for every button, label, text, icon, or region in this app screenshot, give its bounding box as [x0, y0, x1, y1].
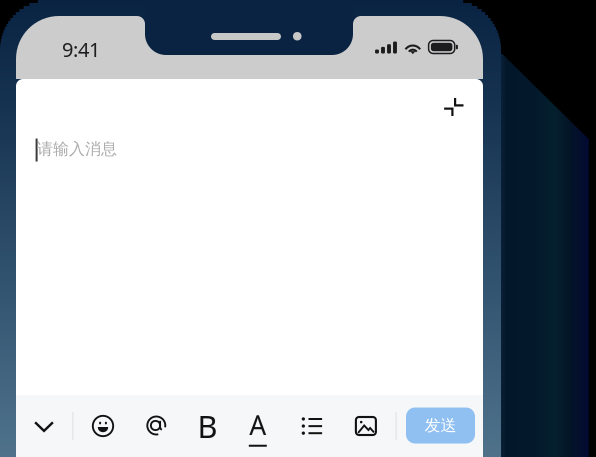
- staticText: 发送: [424, 416, 456, 435]
- staticText: B: [197, 406, 217, 446]
- button[interactable]: Bulleted list: [290, 395, 334, 457]
- button[interactable]: Emoji: [81, 395, 125, 457]
- staticText: 9:41: [62, 36, 100, 63]
- staticText: 请输入消息: [37, 139, 117, 159]
- button[interactable]: 发送: [406, 407, 475, 443]
- button[interactable]: Mention someone: [135, 395, 179, 457]
- staticText: A: [249, 407, 266, 443]
- button[interactable]: Bold: [185, 395, 229, 457]
- button[interactable]: Text colour: [236, 396, 280, 457]
- button[interactable]: Insert image: [344, 395, 388, 457]
- button[interactable]: Collapse toolbar: [24, 395, 64, 457]
- button[interactable]: Collapse editor: [435, 90, 473, 124]
